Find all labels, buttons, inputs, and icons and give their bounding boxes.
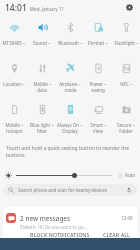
staticText: Touch and hold a quick setting button to… [6, 145, 134, 159]
staticText: BLOCK NOTIFICATIONS [30, 231, 90, 238]
staticText: Secure ~ [117, 122, 135, 128]
staticText: Always On ~ [57, 122, 83, 128]
button[interactable]: Bluetooth ~ [56, 15, 84, 56]
button[interactable]: Flashlight ~ [112, 15, 140, 56]
staticText: Portrait ~ [88, 40, 108, 46]
staticText: saving [91, 87, 105, 93]
button[interactable]: BLOCK NOTIFICATIONS [3, 230, 96, 238]
staticText: Elsbeth: Hi! Do you want to go... [20, 224, 88, 230]
staticText: 2 new messages [20, 214, 71, 223]
staticText: CLEAR ALL [103, 231, 130, 238]
staticText: Power ~ [89, 81, 107, 87]
button[interactable]: 2 new messages [3, 207, 137, 230]
staticText: filter [37, 128, 47, 134]
staticText: Mobile ~ [33, 81, 52, 87]
staticText: Smart ~ [90, 122, 107, 128]
staticText: MT38465 ~ [2, 40, 26, 46]
staticText: NFC ~ [120, 81, 133, 87]
staticText: Wed, January 11 [30, 6, 65, 12]
staticText: Airplane ~ [59, 81, 81, 87]
staticText: Folder [119, 128, 133, 134]
button[interactable]: Always On ~ [56, 97, 84, 138]
staticText: Flashlight ~ [114, 40, 139, 46]
other: Voice search [126, 187, 132, 193]
button[interactable]: Location ~ [0, 56, 28, 97]
staticText: hotspot [6, 128, 23, 134]
button[interactable]: Mobile ~ [0, 97, 28, 138]
button[interactable]: Secure ~ [112, 97, 140, 138]
staticText: Blue light ~ [30, 122, 54, 128]
staticText: Bluetooth ~ [58, 40, 83, 46]
button[interactable]: Search phone and scan for nearby devices [3, 184, 137, 196]
staticText: Sound ~ [33, 40, 51, 46]
staticText: Location ~ [3, 81, 25, 87]
staticText: 12:48 [121, 215, 133, 221]
button[interactable]: MT38465 ~ [0, 15, 28, 56]
button[interactable]: Airplane ~ [56, 56, 84, 97]
button[interactable]: Mobile ~ [28, 56, 56, 97]
button[interactable]: Blue light ~ [28, 97, 56, 138]
staticText: Search phone and scan for nearby devices [18, 187, 107, 193]
staticText: Mobile ~ [5, 122, 24, 128]
staticText: View [93, 128, 103, 134]
button[interactable]: Power ~ [84, 56, 112, 97]
staticText: 14:01 [5, 2, 27, 14]
button[interactable]: Auto [118, 172, 136, 178]
staticText: Auto [125, 172, 136, 178]
button[interactable]: Settings [123, 1, 136, 14]
staticText: mode [64, 87, 77, 93]
staticText: Display [62, 128, 78, 134]
button[interactable]: Smart ~ [84, 97, 112, 138]
button[interactable]: CLEAR ALL [96, 230, 137, 238]
button[interactable]: NFC ~ [112, 56, 140, 97]
button[interactable]: Sound ~ [28, 15, 56, 56]
button[interactable]: Portrait ~ [84, 15, 112, 56]
staticText: data [37, 87, 47, 93]
